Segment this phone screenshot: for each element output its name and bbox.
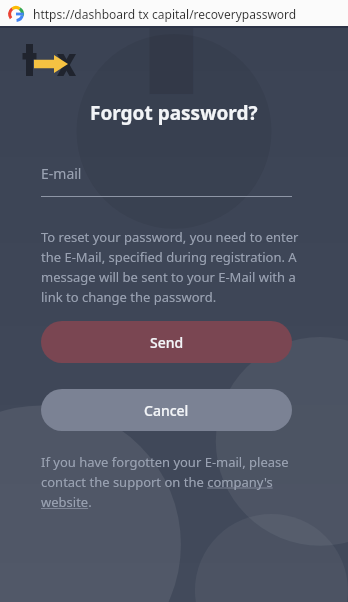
staticText: E-mail — [41, 164, 82, 183]
staticText: Cancel — [144, 401, 189, 420]
staticText: Send — [150, 333, 184, 352]
staticText: To reset your password, you need to ente… — [41, 228, 300, 306]
staticText: Forgot password? — [90, 100, 258, 126]
staticText: https://dashboard tx capital/recoverypas… — [33, 6, 297, 22]
button[interactable]: If you have forgotten your E-mail, pleas… — [41, 453, 300, 511]
button[interactable]: Cancel — [41, 389, 292, 431]
button[interactable]: Send — [41, 321, 292, 363]
